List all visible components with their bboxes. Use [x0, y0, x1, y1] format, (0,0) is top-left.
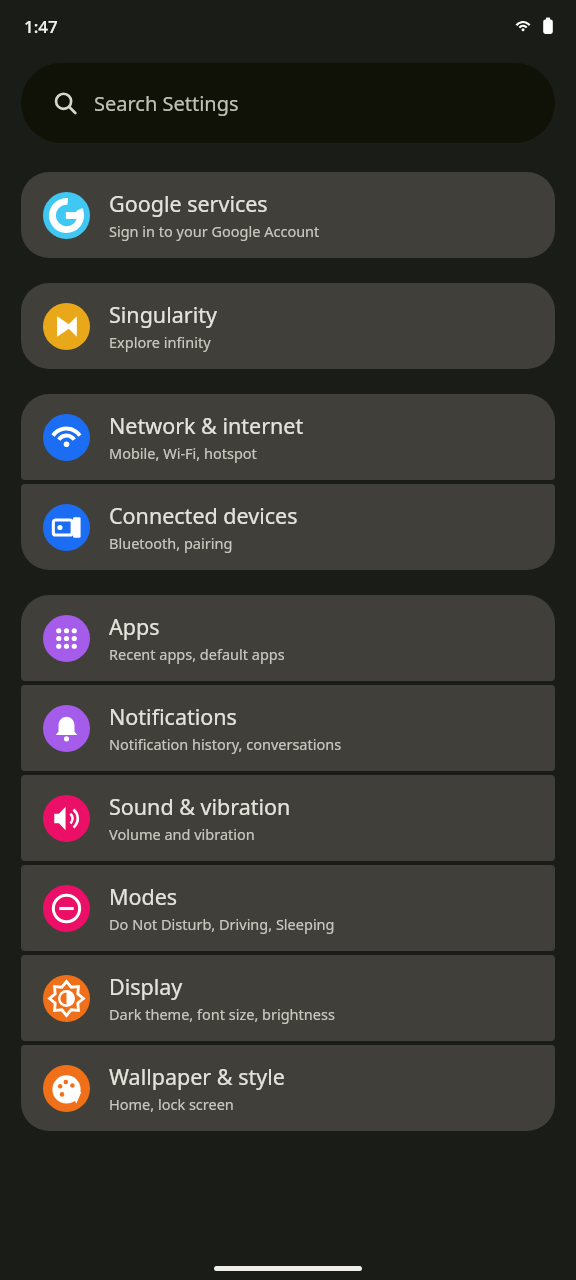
staticText: Dark theme, font size, brightness	[109, 1004, 335, 1024]
staticText: Home, lock screen	[109, 1094, 234, 1114]
staticText: Bluetooth, pairing	[109, 533, 233, 553]
staticText: Connected devices	[109, 501, 298, 530]
staticText: Explore infinity	[109, 332, 211, 352]
staticText: Wallpaper & style	[109, 1062, 285, 1091]
staticText: Volume and vibration	[109, 824, 255, 844]
button[interactable]: Wallpaper & style	[21, 1045, 555, 1131]
staticText: Sound & vibration	[109, 792, 291, 821]
button[interactable]: Sound & vibration	[21, 775, 555, 861]
staticText: Sign in to your Google Account	[109, 221, 320, 241]
staticText: Google services	[109, 189, 268, 218]
staticText: Network & internet	[109, 411, 304, 440]
staticText: Notifications	[109, 702, 237, 731]
button[interactable]: Apps	[21, 595, 555, 681]
button[interactable]: Search Settings	[21, 63, 555, 143]
staticText: Singularity	[109, 300, 217, 329]
staticText: Search Settings	[94, 90, 239, 117]
staticText: Notification history, conversations	[109, 734, 342, 754]
button[interactable]: Modes	[21, 865, 555, 951]
staticText: Mobile, Wi-Fi, hotspot	[109, 443, 257, 463]
staticText: Recent apps, default apps	[109, 644, 285, 664]
button[interactable]: Display	[21, 955, 555, 1041]
button[interactable]: Singularity	[21, 283, 555, 369]
staticText: Apps	[109, 612, 160, 641]
button[interactable]: Google services	[21, 172, 555, 258]
button[interactable]: Connected devices	[21, 484, 555, 570]
button[interactable]: Notifications	[21, 685, 555, 771]
staticText: Do Not Disturb, Driving, Sleeping	[109, 914, 335, 934]
staticText: Modes	[109, 882, 178, 911]
button[interactable]: Network & internet	[21, 394, 555, 480]
staticText: Display	[109, 972, 183, 1001]
staticText: 1:47	[24, 15, 58, 38]
